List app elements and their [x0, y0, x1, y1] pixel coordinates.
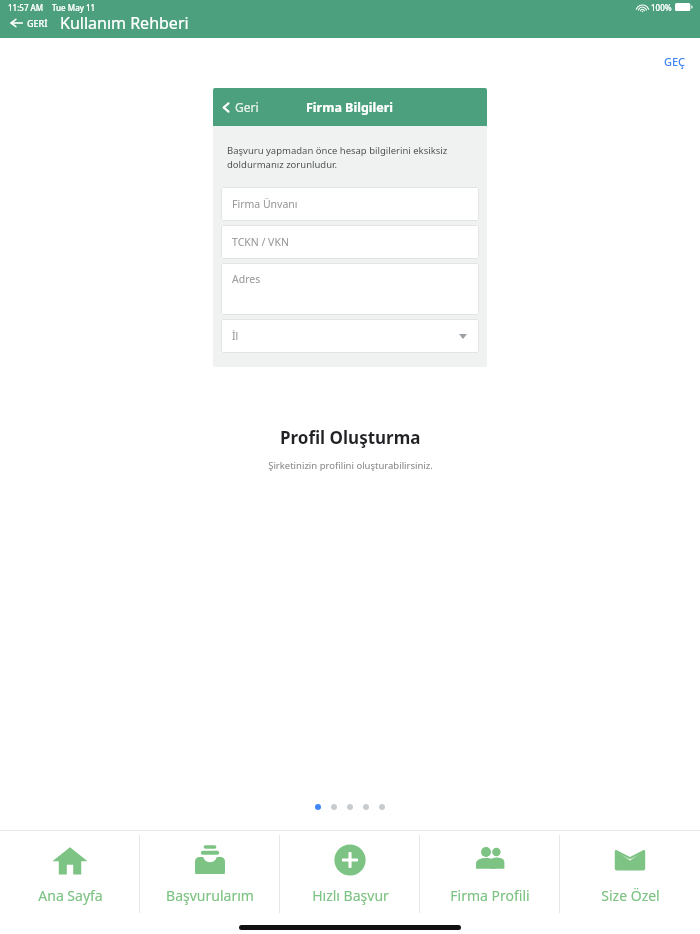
- button[interactable]: Size Özel: [560, 831, 700, 934]
- button[interactable]: TCKN / VKN: [221, 225, 479, 259]
- other: Başvurularım: [190, 840, 230, 880]
- staticText: 100%: [651, 2, 672, 13]
- button[interactable]: Hızlı Başvur: [280, 831, 420, 934]
- staticText: Başvurularım: [166, 886, 254, 905]
- button[interactable]: Firma Ünvanı: [221, 187, 479, 221]
- button[interactable]: Firma Profili: [420, 831, 560, 934]
- button[interactable]: Geri: [213, 95, 267, 119]
- staticText: Firma Bilgileri: [306, 99, 394, 116]
- staticText: Profil Oluşturma: [280, 426, 421, 449]
- staticText: Geri: [235, 99, 259, 115]
- staticText: TCKN / VKN: [232, 235, 289, 249]
- other: Size Özel: [610, 840, 650, 880]
- staticText: Firma Profili: [450, 886, 530, 905]
- button[interactable]: Ana Sayfa: [0, 831, 140, 934]
- button[interactable]: Başvurularım: [140, 831, 280, 934]
- other: Hızlı Başvur: [330, 840, 370, 880]
- staticText: 11:57 AM: [8, 2, 44, 13]
- other: Firma Profili: [470, 840, 510, 880]
- staticText: GEÇ: [664, 54, 686, 69]
- other: Ana Sayfa: [50, 840, 90, 880]
- button[interactable]: GERİ: [0, 14, 54, 32]
- staticText: Firma Ünvanı: [232, 197, 298, 211]
- staticText: Ana Sayfa: [38, 886, 103, 905]
- staticText: Adres: [232, 272, 261, 286]
- staticText: Tue May 11: [52, 2, 96, 13]
- button[interactable]: Adres: [221, 263, 479, 315]
- staticText: GERİ: [27, 17, 48, 29]
- staticText: Başvuru yapmadan önce hesap bilgilerini …: [227, 144, 473, 171]
- button[interactable]: İl: [221, 319, 479, 353]
- staticText: İl: [232, 329, 239, 343]
- staticText: Şirketinizin profilini oluşturabilirsini…: [268, 459, 433, 472]
- staticText: Kullanım Rehberi: [60, 12, 189, 34]
- staticText: Hızlı Başvur: [312, 886, 389, 905]
- button[interactable]: GEÇ: [658, 50, 692, 73]
- staticText: Size Özel: [601, 886, 660, 905]
